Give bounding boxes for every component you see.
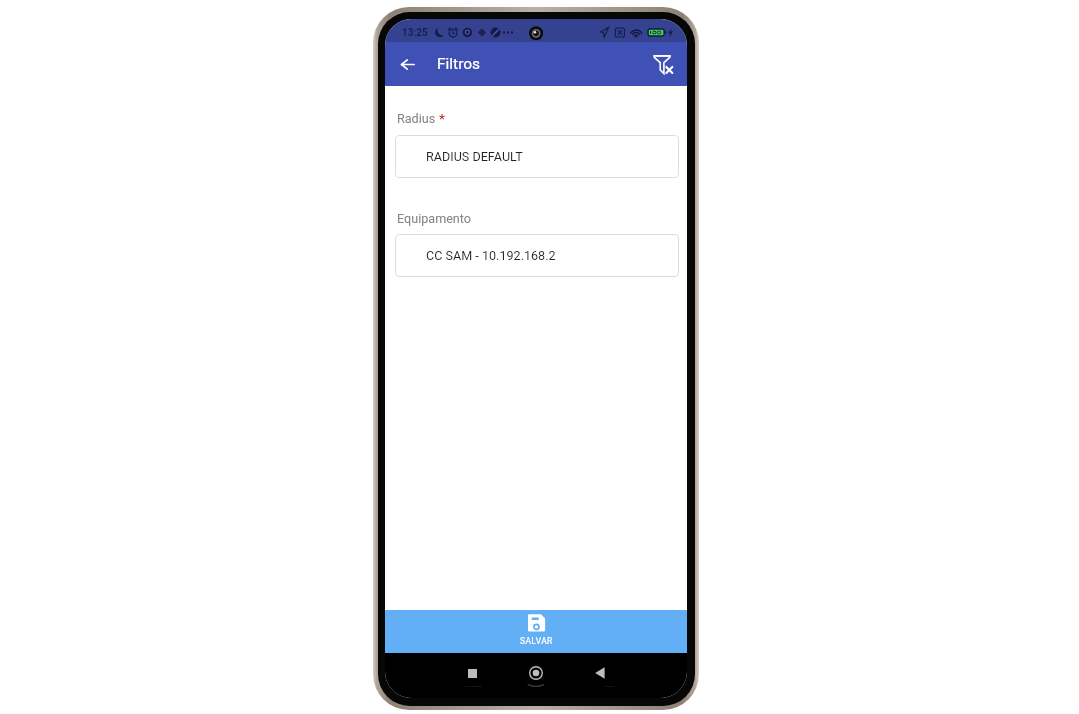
staticText: 13:25 [402,27,428,39]
button[interactable]: Recents [457,658,487,688]
button[interactable]: Back [391,48,423,80]
button[interactable]: Back [585,658,615,688]
button[interactable]: SALVAR [385,610,687,653]
staticText: RADIUS DEFAULT [426,149,523,164]
staticText: CC SAM - 10.192.168.2 [426,248,556,263]
button[interactable]: Clear filters [645,45,683,83]
staticText: Equipamento [397,211,471,226]
button[interactable]: Home [521,658,551,688]
staticText: Radius [397,111,436,126]
button[interactable]: CC SAM - 10.192.168.2 [395,234,679,277]
staticText: * [439,111,445,126]
staticText: Filtros [437,55,481,73]
button[interactable]: RADIUS DEFAULT [395,135,679,178]
staticText: SALVAR [520,636,553,646]
